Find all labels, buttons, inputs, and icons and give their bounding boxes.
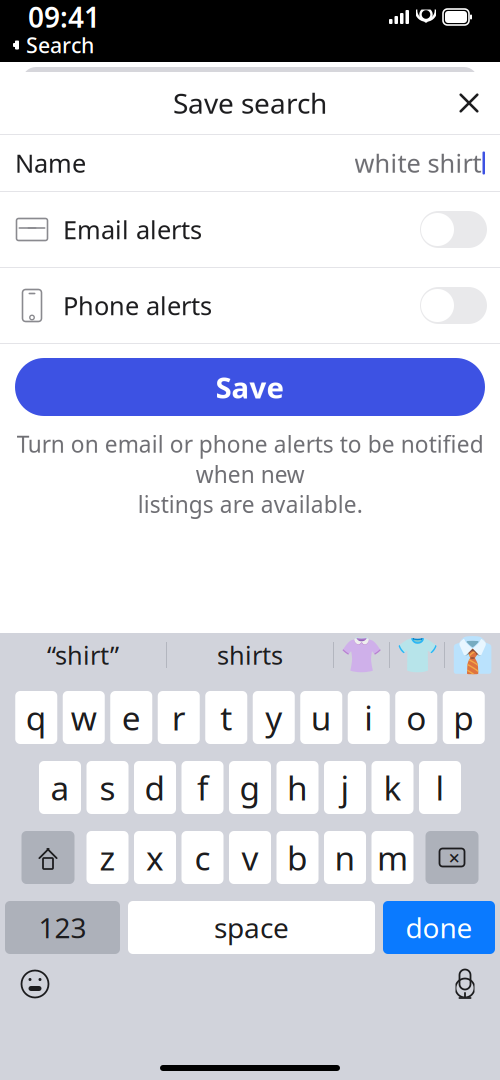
- staticText: f: [197, 765, 208, 810]
- staticText: m: [377, 835, 408, 880]
- button[interactable]: Blouse emoji: [334, 633, 389, 677]
- staticText: w: [71, 695, 97, 740]
- staticText: shirts: [217, 638, 283, 672]
- button[interactable]: g: [229, 761, 271, 814]
- staticText: done: [405, 909, 472, 946]
- staticText: e: [122, 695, 141, 740]
- button[interactable]: Shift: [21, 831, 74, 884]
- button[interactable]: Necktie emoji: [445, 633, 500, 677]
- button[interactable]: done: [383, 901, 495, 954]
- button[interactable]: b: [276, 831, 318, 884]
- button[interactable]: l: [419, 761, 461, 814]
- button[interactable]: y: [253, 691, 295, 744]
- button[interactable]: Emoji keyboard: [13, 962, 57, 1006]
- staticText: j: [340, 765, 349, 810]
- button[interactable]: o: [395, 691, 437, 744]
- button[interactable]: Email alerts: [0, 192, 500, 267]
- staticText: n: [334, 835, 355, 880]
- button[interactable]: Name: [0, 135, 500, 191]
- button[interactable]: e: [110, 691, 152, 744]
- staticText: b: [287, 835, 308, 880]
- staticText: 👚: [340, 635, 383, 675]
- staticText: c: [194, 835, 210, 880]
- staticText: i: [364, 695, 373, 740]
- staticText: 09:41: [28, 0, 100, 36]
- staticText: x: [146, 835, 164, 880]
- staticText: 123: [38, 909, 86, 946]
- button[interactable]: r: [158, 691, 200, 744]
- staticText: Turn on email or phone alerts to be noti…: [16, 429, 483, 519]
- button[interactable]: v: [229, 831, 271, 884]
- button[interactable]: Phone alerts: [0, 268, 500, 343]
- staticText: white shirt: [354, 146, 481, 180]
- button[interactable]: Delete: [425, 831, 478, 884]
- staticText: r: [172, 695, 186, 740]
- button[interactable]: s: [86, 761, 128, 814]
- button[interactable]: u: [300, 691, 342, 744]
- staticText: ×: [448, 844, 459, 871]
- staticText: Search: [26, 31, 94, 59]
- button[interactable]: p: [443, 691, 485, 744]
- button[interactable]: t: [205, 691, 247, 744]
- staticText: “shirt”: [47, 638, 119, 672]
- button[interactable]: j: [324, 761, 366, 814]
- button[interactable]: c: [181, 831, 223, 884]
- staticText: t: [220, 695, 232, 740]
- staticText: h: [287, 765, 308, 810]
- staticText: Save search: [173, 84, 327, 122]
- staticText: 👔: [451, 635, 494, 675]
- button[interactable]: 123: [5, 901, 120, 954]
- staticText: g: [239, 765, 260, 810]
- staticText: Save: [215, 367, 284, 406]
- button[interactable]: f: [181, 761, 223, 814]
- staticText: Name: [15, 146, 86, 180]
- button[interactable]: i: [348, 691, 390, 744]
- button[interactable]: space: [128, 901, 375, 954]
- button[interactable]: T-shirt emoji: [390, 633, 444, 677]
- staticText: q: [26, 695, 47, 740]
- button[interactable]: n: [324, 831, 366, 884]
- button[interactable]: Close: [454, 88, 500, 118]
- staticText: p: [453, 695, 474, 740]
- button[interactable]: x: [134, 831, 176, 884]
- staticText: a: [50, 765, 69, 810]
- button[interactable]: m: [371, 831, 413, 884]
- staticText: d: [144, 765, 165, 810]
- button[interactable]: w: [63, 691, 105, 744]
- staticText: k: [383, 765, 401, 810]
- staticText: 👕: [395, 635, 438, 675]
- button[interactable]: Dictation: [443, 962, 487, 1006]
- button[interactable]: Save: [15, 358, 485, 416]
- button[interactable]: z: [86, 831, 128, 884]
- staticText: z: [99, 835, 115, 880]
- staticText: y: [265, 695, 282, 740]
- button[interactable]: h: [276, 761, 318, 814]
- button[interactable]: “shirt”: [0, 633, 166, 677]
- staticText: space: [214, 909, 289, 946]
- staticText: s: [99, 765, 115, 810]
- staticText: l: [435, 765, 444, 810]
- button[interactable]: d: [134, 761, 176, 814]
- button[interactable]: a: [39, 761, 81, 814]
- button[interactable]: k: [371, 761, 413, 814]
- staticText: u: [311, 695, 332, 740]
- staticText: Email alerts: [63, 213, 202, 246]
- staticText: v: [241, 835, 258, 880]
- button[interactable]: q: [15, 691, 57, 744]
- staticText: Phone alerts: [63, 289, 212, 322]
- button[interactable]: shirts: [167, 633, 333, 677]
- staticText: o: [406, 695, 426, 740]
